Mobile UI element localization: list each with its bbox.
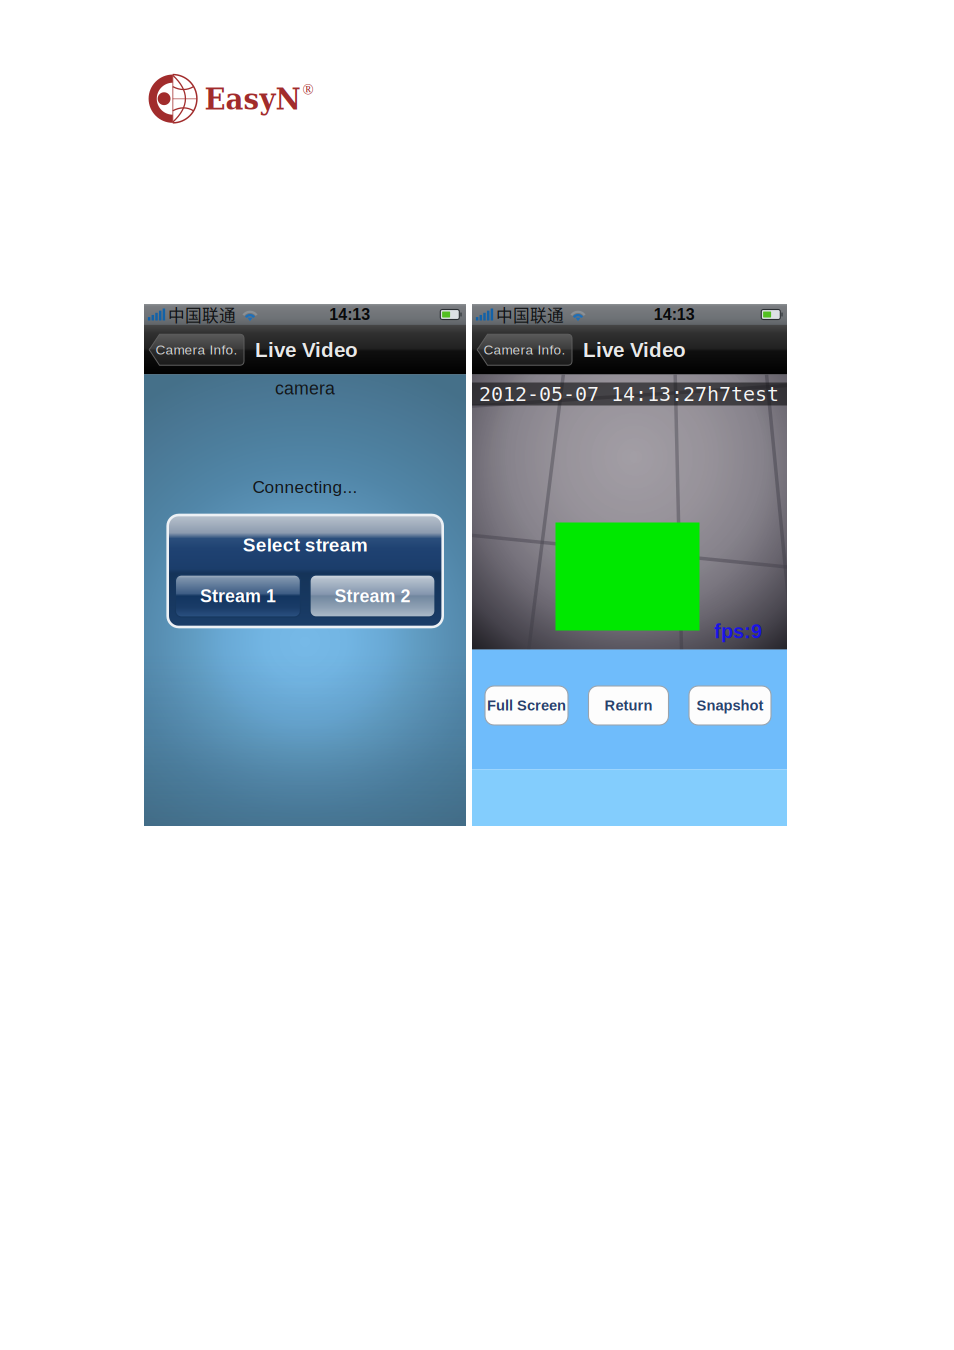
staticText: 中国联通	[496, 302, 564, 326]
staticText: camera	[275, 378, 335, 398]
staticText: EasyN	[204, 81, 300, 117]
staticText: 14:13	[654, 306, 695, 323]
staticText: Live Video	[255, 338, 358, 361]
staticText: 2012-05-07 14:13:27h7test	[479, 382, 779, 406]
staticText: Snapshot	[696, 697, 763, 714]
staticText: Stream 2	[334, 586, 410, 606]
button[interactable]: Stream 1	[175, 575, 300, 617]
button[interactable]: Snapshot	[689, 686, 771, 725]
staticText: 14:13	[329, 306, 370, 323]
staticText: Return	[604, 697, 652, 714]
staticText: Camera Info.	[155, 342, 237, 357]
button[interactable]: Return	[588, 686, 668, 725]
staticText: fps:9	[714, 620, 762, 642]
staticText: 中国联通	[168, 302, 236, 326]
button[interactable]: Stream 2	[310, 575, 435, 617]
staticText: Camera Info.	[483, 342, 565, 357]
staticText: Select stream	[243, 534, 368, 556]
staticText: ®	[302, 82, 313, 98]
button[interactable]: Camera Info.	[149, 334, 244, 365]
button[interactable]: Full Screen	[485, 686, 568, 725]
staticText: Full Screen	[487, 697, 566, 714]
staticText: Stream 1	[200, 586, 276, 606]
button[interactable]: Camera Info.	[477, 334, 572, 365]
staticText: Live Video	[583, 338, 686, 361]
staticText: Connecting...	[252, 477, 357, 497]
